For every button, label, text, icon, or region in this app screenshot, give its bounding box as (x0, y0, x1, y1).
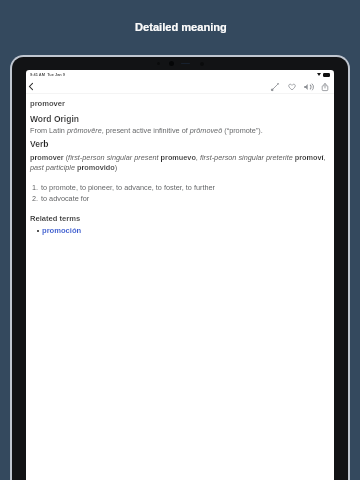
button[interactable]: Sound (300, 79, 315, 94)
staticText: promover (first-person singular present … (30, 153, 330, 172)
staticText: 2. (32, 194, 39, 202)
button[interactable]: promoción (42, 226, 82, 234)
staticText: 1. (32, 183, 39, 191)
staticText: promover (30, 99, 66, 107)
staticText: From Latin prōmovēre, present active inf… (30, 126, 263, 134)
button[interactable]: Favorite (284, 79, 299, 94)
staticText: to advocate for (41, 194, 90, 202)
staticText: promoción (42, 226, 82, 234)
staticText: Detailed meaning (135, 21, 227, 33)
staticText: to promote, to pioneer, to advance, to f… (41, 183, 216, 191)
staticText: 9:41 AM Tue Jan 9 (30, 72, 66, 76)
button[interactable]: Back (26, 79, 38, 93)
button[interactable]: Edit (267, 79, 282, 94)
button[interactable]: Share (317, 79, 332, 94)
staticText: Related terms (30, 214, 81, 222)
staticText: Word Origin (30, 114, 79, 123)
staticText: Verb (30, 139, 49, 148)
